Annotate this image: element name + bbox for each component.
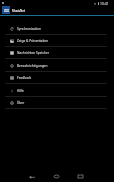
button[interactable]: Home (44, 170, 68, 182)
button[interactable]: Nachrichten Speicher (0, 47, 114, 59)
button[interactable]: Synchronisation (0, 23, 114, 35)
button[interactable]: Open navigation menu (2, 6, 10, 14)
staticText: Synchronisation (17, 27, 42, 31)
staticText: Über (17, 101, 25, 105)
button[interactable]: Zeige & Präsentation (0, 35, 114, 47)
staticText: MusicNet (12, 9, 26, 13)
staticText: Feedback (17, 76, 32, 80)
button[interactable]: Feedback (0, 72, 114, 84)
staticText: Zeige & Präsentation (17, 39, 49, 43)
button[interactable]: ? (0, 85, 114, 97)
staticText: ? (11, 89, 13, 93)
staticText: 10:41 (100, 1, 109, 6)
button[interactable]: Recent apps (68, 170, 92, 182)
button[interactable]: Benachrichtigungen (0, 60, 114, 72)
staticText: Benachrichtigungen (17, 64, 48, 68)
button[interactable]: Über (0, 97, 114, 109)
staticText: Hilfe (17, 89, 24, 93)
button[interactable]: Back (20, 170, 44, 182)
staticText: Nachrichten Speicher (17, 51, 50, 55)
